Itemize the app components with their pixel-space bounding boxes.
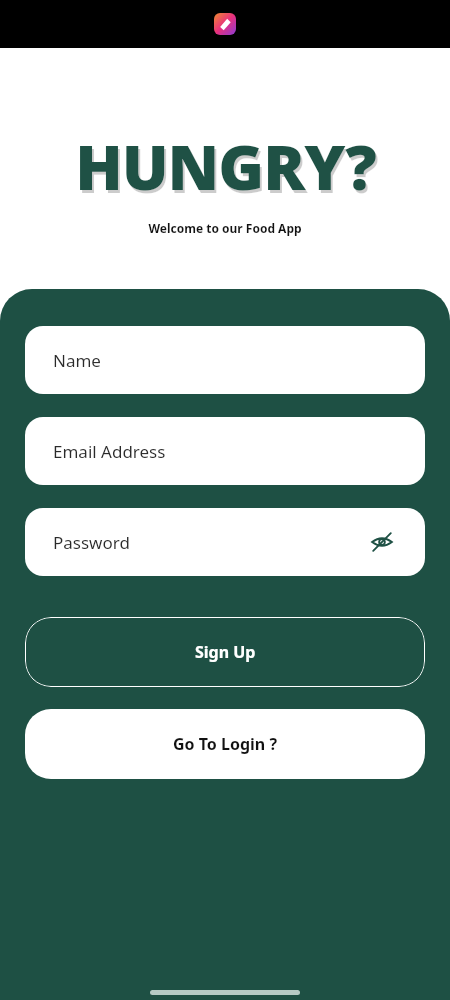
staticText: HUNGRY? xyxy=(77,127,378,211)
staticText: Go To Login ? xyxy=(173,733,278,755)
staticText: HUNGRY? xyxy=(75,124,376,208)
staticText: Email Address xyxy=(53,440,397,463)
staticText: Welcome to our Food App xyxy=(148,220,302,236)
staticText: Password xyxy=(53,531,367,554)
button[interactable]: Name xyxy=(25,326,425,394)
staticText: Name xyxy=(53,349,397,372)
button[interactable]: Show password xyxy=(367,527,397,557)
button[interactable]: Go To Login ? xyxy=(25,709,425,779)
button[interactable]: Email Address xyxy=(25,417,425,485)
button[interactable]: Password xyxy=(25,508,425,576)
button[interactable]: Sign Up xyxy=(25,617,425,687)
staticText: Sign Up xyxy=(195,641,256,663)
